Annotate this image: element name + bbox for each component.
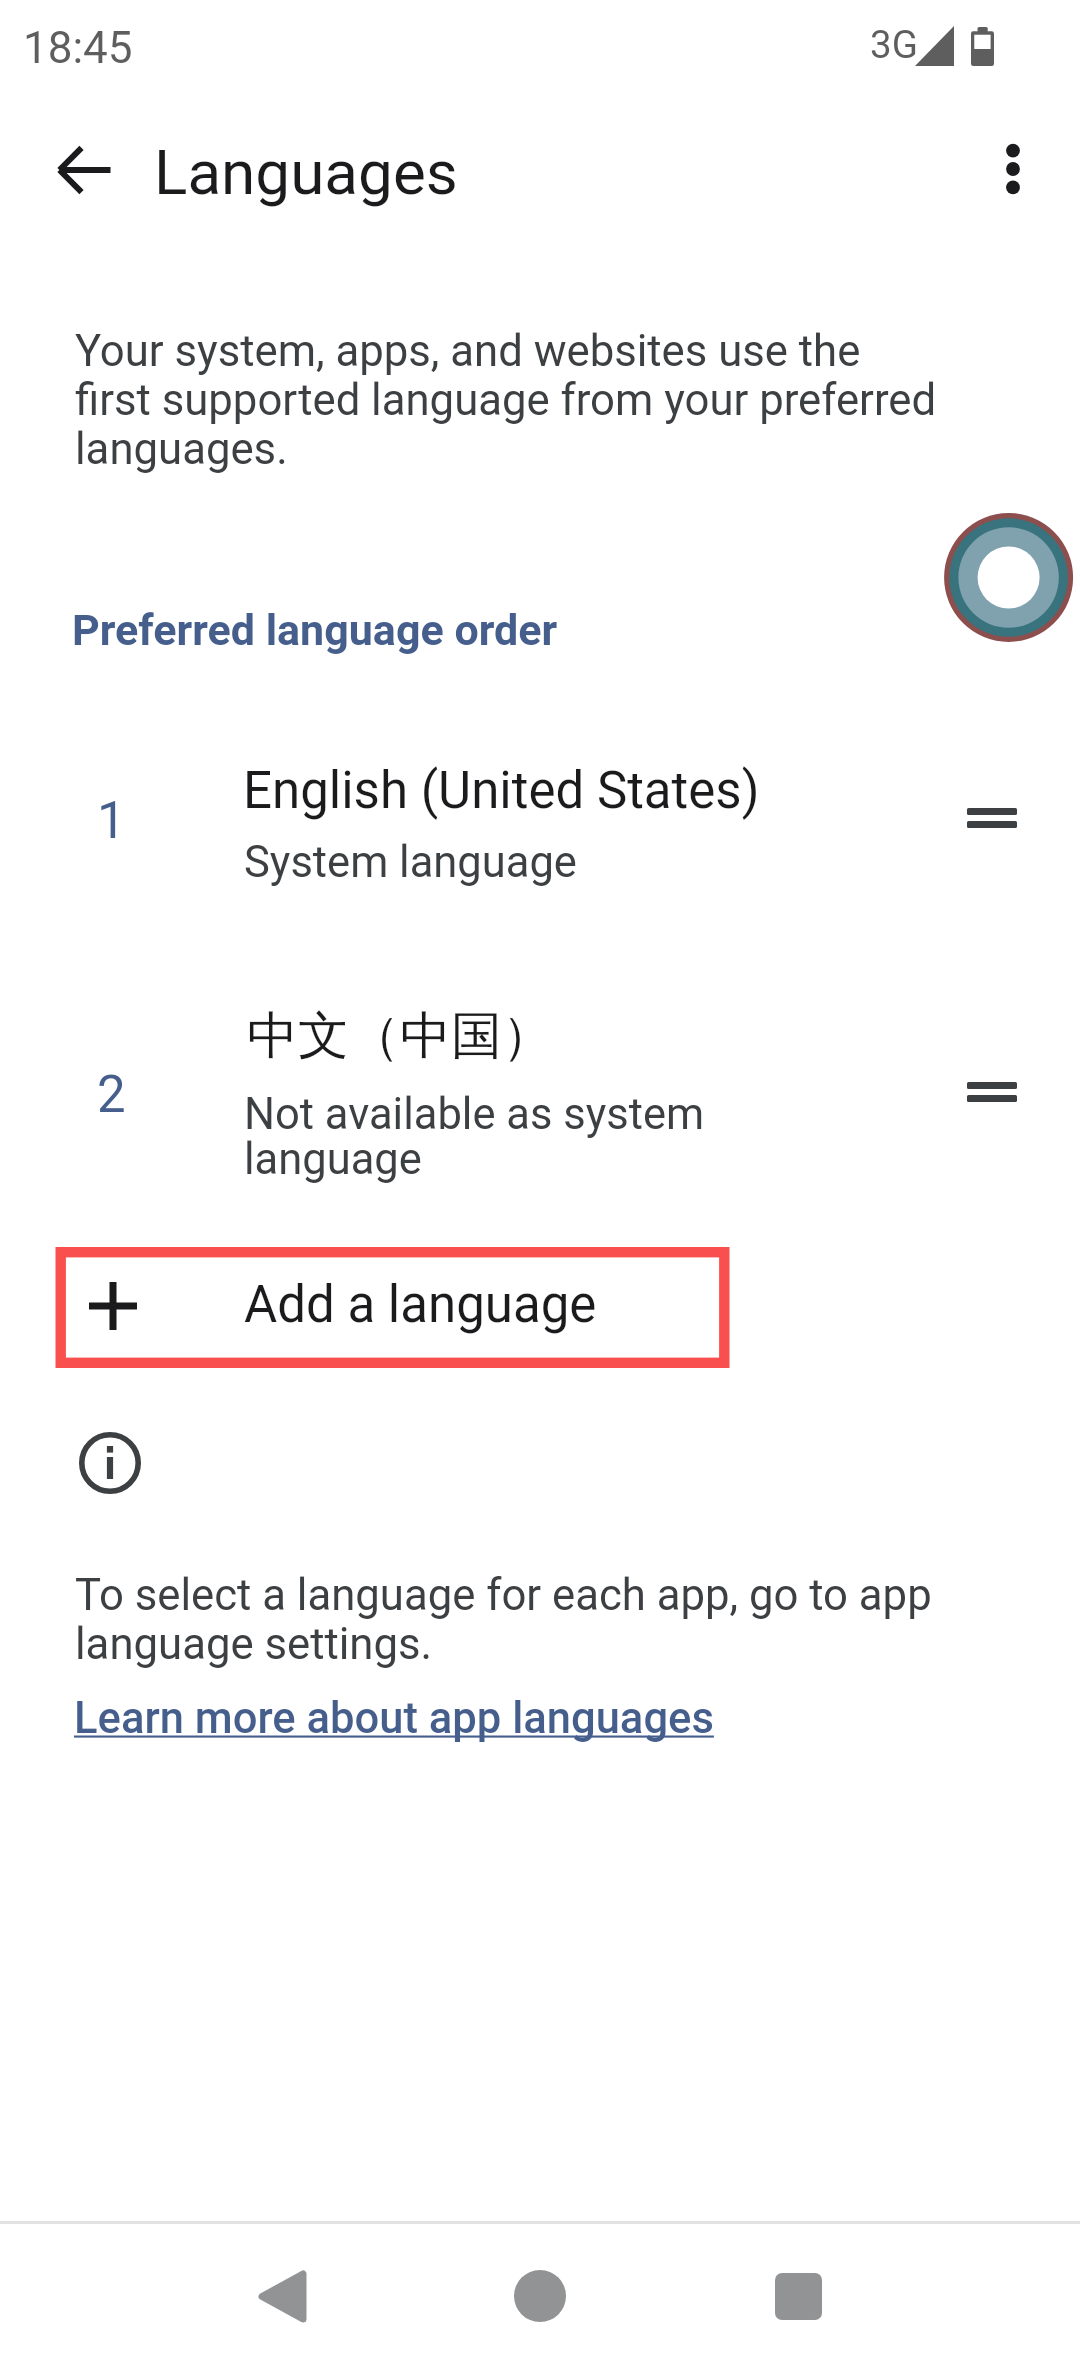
button[interactable]: Navigate up [27, 112, 143, 228]
button[interactable]: 2 [0, 960, 1080, 1230]
button[interactable]: Reorder [934, 760, 1050, 876]
button[interactable]: Languages [148, 114, 484, 234]
staticText: System language [244, 837, 577, 888]
staticText: 2 [97, 1065, 126, 1125]
staticText: Languages [154, 136, 458, 209]
button[interactable]: Recent apps [738, 2236, 858, 2356]
staticText: English (United States) [243, 761, 760, 821]
staticText: 18:45 [23, 22, 133, 74]
button[interactable]: More options [955, 111, 1071, 227]
staticText: To select a language for each app, go to… [75, 1569, 955, 1669]
staticText: Preferred language order [72, 605, 558, 655]
button[interactable]: Back [222, 2236, 342, 2356]
staticText: Add a language [244, 1275, 597, 1335]
staticText: 3G [870, 22, 918, 67]
button[interactable]: Learn more about app languages [74, 1690, 724, 1752]
button[interactable]: Add a language [0, 1245, 1080, 1371]
staticText: 中文（中国） [247, 1004, 553, 1068]
button[interactable]: Reorder [934, 1034, 1050, 1150]
staticText: Learn more about app languages [74, 1693, 714, 1744]
button[interactable]: 1 [0, 700, 1080, 930]
button[interactable]: Home [480, 2236, 600, 2356]
staticText: Not available as system language [244, 1089, 714, 1184]
staticText: Your system, apps, and websites use the … [75, 325, 941, 474]
staticText: 1 [97, 791, 126, 851]
